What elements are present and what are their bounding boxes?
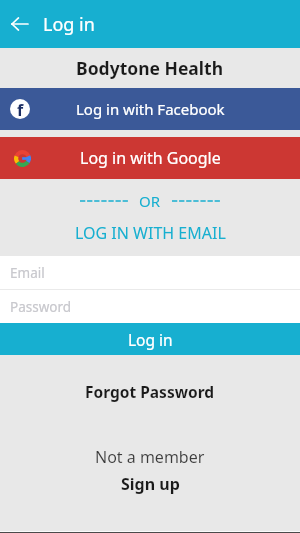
button[interactable]: Forgot Password	[0, 380, 300, 402]
staticText: Log in with Google	[80, 147, 221, 169]
button[interactable]: Log in	[0, 323, 300, 355]
staticText: Log in	[128, 329, 173, 350]
staticText: Log in with Facebook	[76, 99, 225, 119]
staticText: OR	[139, 191, 161, 210]
staticText: Email	[10, 264, 45, 282]
staticText: f	[17, 99, 24, 119]
button[interactable]: Email	[0, 256, 300, 289]
staticText: Password	[10, 298, 72, 316]
button[interactable]: Back	[0, 0, 38, 48]
staticText: Sign up	[121, 473, 180, 495]
staticText: LOG IN WITH EMAIL	[75, 222, 226, 244]
staticText: Bodytone Health	[76, 56, 224, 80]
button[interactable]: Sign up	[0, 473, 300, 495]
button[interactable]: LOG IN WITH EMAIL	[0, 222, 300, 244]
staticText: Forgot Password	[85, 381, 215, 402]
button[interactable]: Log in with Facebook	[0, 88, 300, 130]
button[interactable]: Password	[0, 290, 300, 323]
button[interactable]: Log in with Google	[0, 137, 300, 179]
staticText: Log in	[43, 12, 95, 37]
staticText: Not a member	[95, 446, 205, 468]
